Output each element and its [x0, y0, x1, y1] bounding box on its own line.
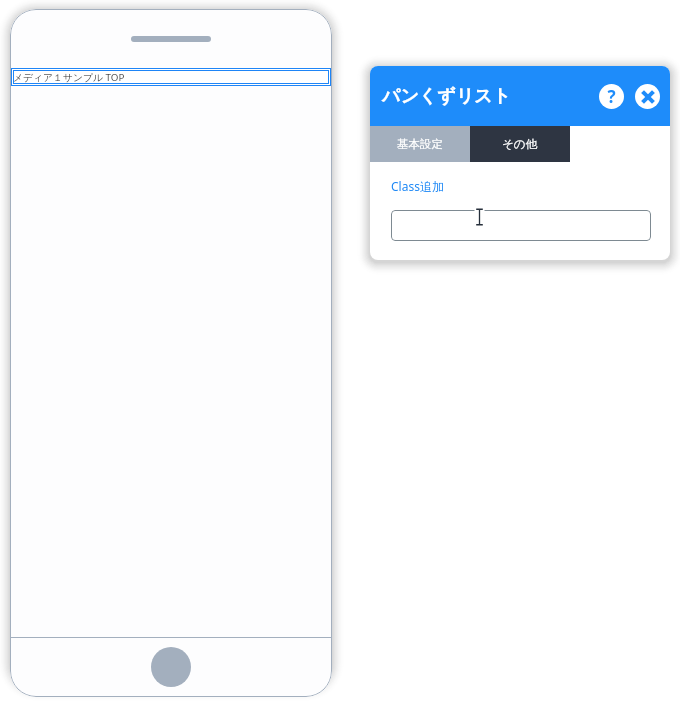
- staticText: その他: [502, 137, 538, 151]
- staticText: パンくずリスト: [382, 85, 511, 108]
- button[interactable]: その他: [470, 126, 570, 162]
- button[interactable]: Class追加: [391, 178, 444, 194]
- button[interactable]: 基本設定: [370, 126, 470, 162]
- staticText: メディア１サンプル TOP: [13, 71, 125, 84]
- button[interactable]: Close: [635, 84, 660, 109]
- button[interactable]: [391, 210, 651, 241]
- staticText: ?: [607, 85, 616, 108]
- button[interactable]: Help: [599, 84, 624, 109]
- staticText: 基本設定: [397, 137, 443, 151]
- button[interactable]: Home: [151, 647, 191, 687]
- button[interactable]: メディア１サンプル TOP: [11, 68, 331, 86]
